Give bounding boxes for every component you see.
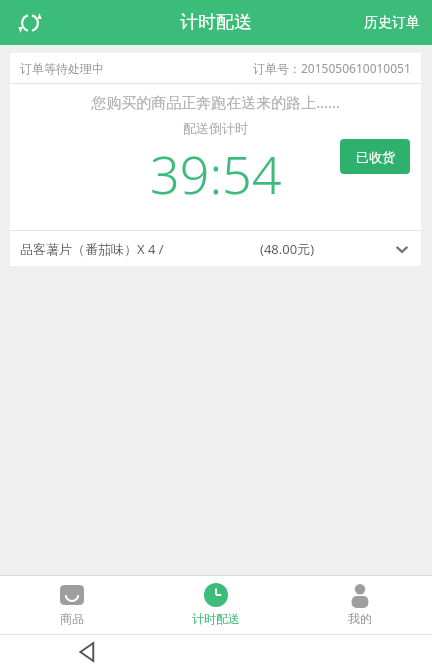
button[interactable]: 商品 (0, 576, 144, 634)
staticText: 历史订单 (364, 14, 420, 32)
staticText: 已收货 (356, 149, 395, 165)
button[interactable]: 历史订单 (352, 0, 432, 45)
staticText: 配送倒计时 (183, 120, 248, 136)
staticText: 商品 (60, 611, 84, 626)
button[interactable]: 品客薯片（番茄味）X 4 / (10, 231, 421, 266)
staticText: 您购买的商品正奔跑在送来的路上…… (91, 92, 340, 112)
staticText: 订单等待处理中 (20, 61, 104, 76)
staticText: 39:54 (150, 138, 282, 209)
staticText: 订单号：2015050610010051 (253, 60, 411, 76)
staticText: 计时配送 (180, 11, 252, 34)
staticText: 品客薯片（番茄味）X 4 / (20, 240, 164, 258)
staticText: 计时配送 (192, 611, 240, 626)
staticText: (48.00元) (260, 240, 315, 258)
button[interactable]: 计时配送 (144, 576, 288, 634)
button[interactable]: 我的 (288, 576, 432, 634)
button[interactable]: Back (72, 638, 100, 666)
button[interactable]: 已收货 (340, 139, 410, 174)
button[interactable]: Refresh (10, 3, 50, 43)
staticText: 我的 (348, 611, 372, 626)
